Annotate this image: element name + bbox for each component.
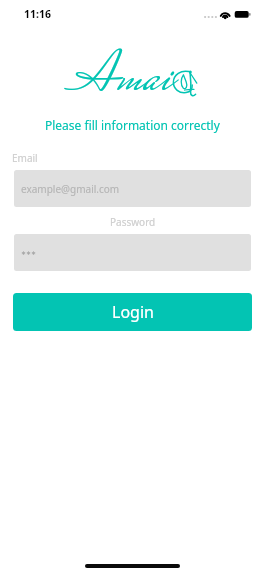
button[interactable]: Login [13,293,252,331]
staticText: Please fill information correctly [45,117,220,133]
other: Home indicator [85,564,180,568]
staticText: Email [12,151,38,165]
staticText: example@gmail.com [21,182,120,196]
staticText: ∗∗∗ [21,249,37,256]
staticText: Amai [70,36,172,124]
button[interactable]: example@gmail.com [14,170,251,207]
staticText: Login [112,301,154,323]
staticText: 11:16 [24,7,51,21]
staticText: Password [110,215,156,229]
